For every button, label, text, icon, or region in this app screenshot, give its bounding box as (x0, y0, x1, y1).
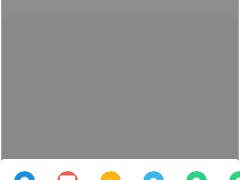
button[interactable]: Share with Duo (229, 171, 240, 180)
button[interactable]: Share with Telegram (143, 171, 165, 180)
button[interactable]: Share with Messages (14, 171, 36, 180)
button[interactable]: Share with Keep (100, 171, 122, 180)
button[interactable]: Share with Gmail (57, 171, 79, 180)
button[interactable]: Share with WhatsApp (186, 171, 208, 180)
